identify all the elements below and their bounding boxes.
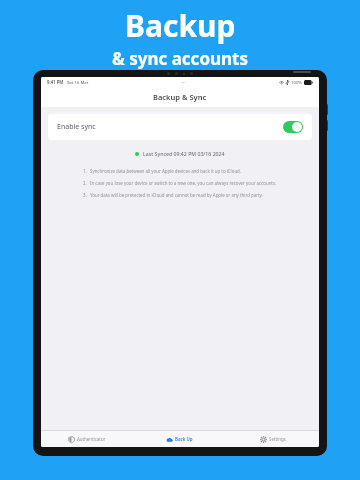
button[interactable]: Enable sync bbox=[283, 121, 303, 133]
staticText: Last Synced 09:42 PM 03/16 2024 bbox=[143, 150, 225, 157]
button[interactable]: Settings bbox=[226, 431, 319, 447]
staticText: Back Up bbox=[175, 436, 193, 442]
staticText: In case you lose your device or switch t… bbox=[90, 180, 277, 186]
staticText: & sync accounts bbox=[112, 47, 249, 70]
button[interactable]: Authenticator bbox=[41, 431, 133, 447]
staticText: 9:41 PM bbox=[47, 79, 64, 85]
button[interactable]: Back Up bbox=[133, 431, 226, 447]
staticText: Sat 16 Mar bbox=[67, 79, 89, 85]
staticText: Your data will be protected in iCloud an… bbox=[90, 192, 263, 198]
button[interactable]: Enable sync bbox=[48, 114, 312, 140]
staticText: Synchronize data between all your Apple … bbox=[90, 168, 242, 174]
staticText: 3. bbox=[83, 192, 87, 198]
staticText: Settings bbox=[269, 436, 286, 442]
staticText: Enable sync bbox=[57, 122, 96, 132]
staticText: Backup & Sync bbox=[153, 92, 207, 102]
staticText: 2. bbox=[83, 180, 87, 186]
staticText: Authenticator bbox=[77, 436, 106, 442]
staticText: Backup bbox=[125, 5, 236, 46]
staticText: 1. bbox=[83, 168, 87, 174]
staticText: 100% bbox=[291, 79, 302, 85]
